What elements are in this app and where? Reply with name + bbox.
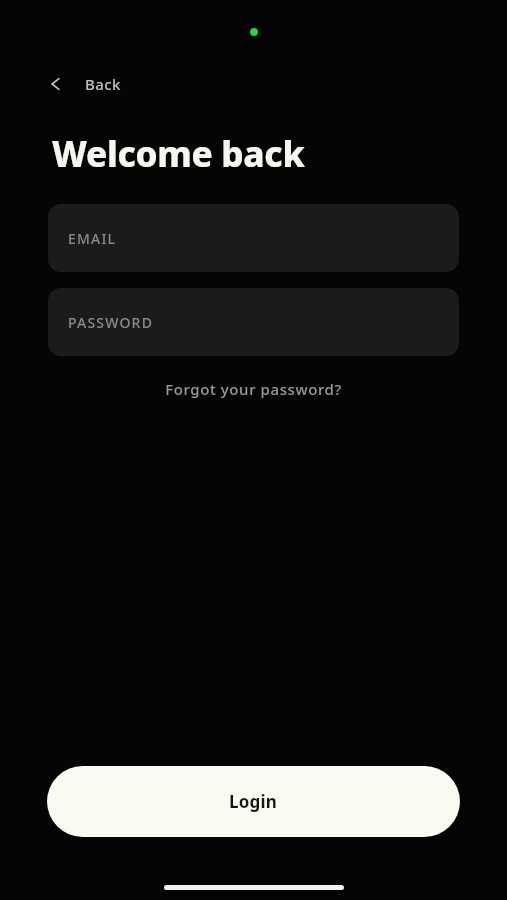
- button[interactable]: EMAIL: [48, 204, 459, 272]
- staticText: EMAIL: [68, 229, 117, 248]
- staticText: Back: [85, 74, 121, 94]
- staticText: Welcome back: [52, 130, 305, 178]
- button[interactable]: Back: [40, 68, 129, 100]
- staticText: Login: [229, 790, 278, 813]
- button[interactable]: PASSWORD: [48, 288, 459, 356]
- button[interactable]: Login: [47, 766, 460, 837]
- staticText: PASSWORD: [68, 313, 154, 332]
- button[interactable]: Forgot your password?: [155, 374, 352, 404]
